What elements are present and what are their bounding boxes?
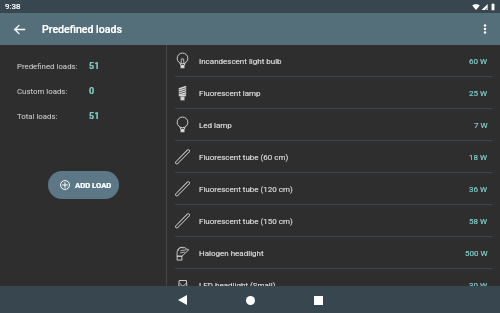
staticText: Fluorescent tube (60 cm) [199,153,469,162]
button[interactable]: Incandescent light bulb [167,45,500,77]
staticText: Incandescent light bulb [199,57,469,66]
button[interactable]: More options [470,13,500,45]
staticText: Fluorescent tube (150 cm) [199,217,469,226]
staticText: ADD LOAD [75,181,112,190]
button[interactable]: ADD LOAD [48,171,119,199]
staticText: Total loads: [17,112,89,121]
staticText: 51 [89,61,100,72]
staticText: Led lamp [199,121,474,130]
button[interactable]: Halogen headlight [167,237,500,269]
staticText: 9:38 [5,2,21,11]
button[interactable]: Fluorescent lamp [167,77,500,109]
staticText: Predefined loads [42,23,122,35]
staticText: 18 W [469,153,488,162]
button[interactable]: Led lamp [167,109,500,141]
staticText: LED headlight (Small) [199,281,469,286]
button[interactable]: Back [169,287,195,313]
button[interactable]: Home [237,287,263,313]
staticText: 51 [89,111,100,122]
staticText: 500 W [465,249,488,258]
staticText: Fluorescent lamp [199,89,469,98]
button[interactable]: Fluorescent tube (150 cm) [167,205,500,237]
staticText: 7 W [474,121,488,130]
staticText: Custom loads: [17,87,89,96]
button[interactable]: Recent apps [305,287,331,313]
staticText: Predefined loads: [17,62,89,71]
staticText: 60 W [469,57,488,66]
staticText: Halogen headlight [199,249,465,258]
staticText: Fluorescent tube (120 cm) [199,185,469,194]
staticText: 36 W [469,185,488,194]
button[interactable]: Fluorescent tube (120 cm) [167,173,500,205]
button[interactable]: LED headlight (Small) [167,269,500,286]
staticText: 0 [89,86,95,97]
staticText: 58 W [469,217,488,226]
staticText: 30 W [469,281,488,286]
button[interactable]: Fluorescent tube (60 cm) [167,141,500,173]
button[interactable]: Navigate up [0,13,38,45]
staticText: 25 W [469,89,488,98]
